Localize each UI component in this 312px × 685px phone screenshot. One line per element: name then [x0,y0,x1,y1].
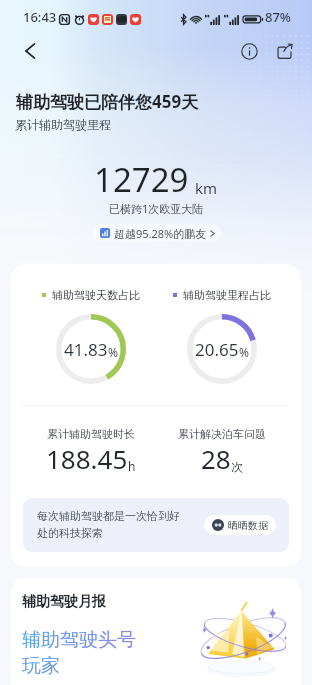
staticText: 超越95.28%的鹏友 [114,226,207,241]
staticText: 辅助驾驶里程占比 [183,288,271,302]
button[interactable]: 辅助驾驶月报 [11,578,301,685]
staticText: 41.83 [64,338,108,361]
staticText: 次 [231,459,243,474]
button[interactable]: 超越95.28%的鹏友 [92,224,221,242]
staticText: 20.65 [195,338,239,361]
staticText: 12729 [94,157,189,202]
staticText: 辅助驾驶月报 [22,593,106,611]
staticText: 188.45 [46,441,128,476]
staticText: 28 [201,441,231,476]
staticText: km [195,178,218,198]
staticText: 87% [265,8,291,26]
staticText: 每次辅助驾驶都是一次恰到好 处的科技探索 [37,509,180,541]
staticText: 辅助驾驶天数占比 [52,288,140,302]
button[interactable]: 晒晒数据 [204,515,276,535]
button[interactable]: Info [237,39,261,63]
staticText: h [128,458,136,474]
staticText: % [108,344,118,360]
staticText: 累计辅助驾驶时长 [47,427,135,441]
staticText: 累计解决泊车问题 [178,427,266,441]
staticText: 晒晒数据 [228,519,268,532]
staticText: 16:43 [23,8,57,26]
staticText: % [239,344,249,360]
button[interactable]: Share [272,39,296,63]
staticText: 已横跨1次欧亚大陆 [109,201,204,216]
staticText: 辅助驾驶头号 玩家 [22,628,136,677]
staticText: 累计辅助驾驶里程 [15,117,111,132]
button[interactable]: Back [16,37,44,65]
staticText: 辅助驾驶已陪伴您459天 [16,90,199,113]
